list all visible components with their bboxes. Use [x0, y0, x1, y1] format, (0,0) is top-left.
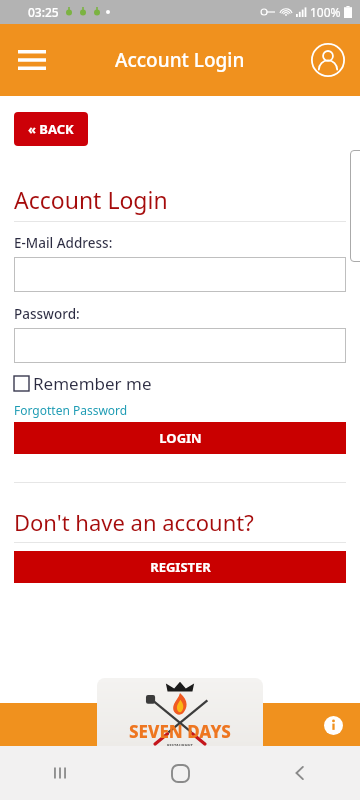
staticText: REGISTER: [150, 558, 211, 576]
staticText: Don't have an account?: [14, 507, 254, 537]
button[interactable]: Text input: [14, 257, 346, 292]
button[interactable]: « BACK: [14, 112, 88, 146]
staticText: 03:25: [28, 4, 59, 20]
button[interactable]: Seven Days Restaurant logo: [97, 678, 263, 746]
button[interactable]: LOGIN: [14, 422, 346, 454]
button[interactable]: REGISTER: [14, 551, 346, 583]
staticText: Remember me: [33, 372, 152, 395]
button[interactable]: Recent apps: [0, 746, 120, 800]
button[interactable]: Home: [120, 746, 240, 800]
button[interactable]: Remember me: [14, 372, 152, 395]
button[interactable]: Text input: [14, 328, 346, 363]
button[interactable]: Back: [240, 746, 360, 800]
staticText: Account Login: [115, 47, 245, 73]
staticText: Password:: [14, 305, 80, 323]
staticText: RESTAURANT: [167, 743, 193, 746]
button[interactable]: Account: [304, 36, 352, 84]
staticText: « BACK: [28, 120, 74, 138]
staticText: Forgotten Password: [14, 402, 128, 418]
staticText: 100%: [310, 4, 341, 20]
staticText: SEVEN DAYS: [129, 720, 231, 743]
button[interactable]: Forgotten Password: [14, 402, 128, 418]
button[interactable]: Open navigation menu: [8, 36, 56, 84]
button[interactable]: Information: [318, 710, 348, 740]
staticText: E-Mail Address:: [14, 234, 113, 252]
staticText: Account Login: [14, 184, 168, 215]
staticText: LOGIN: [159, 429, 202, 447]
